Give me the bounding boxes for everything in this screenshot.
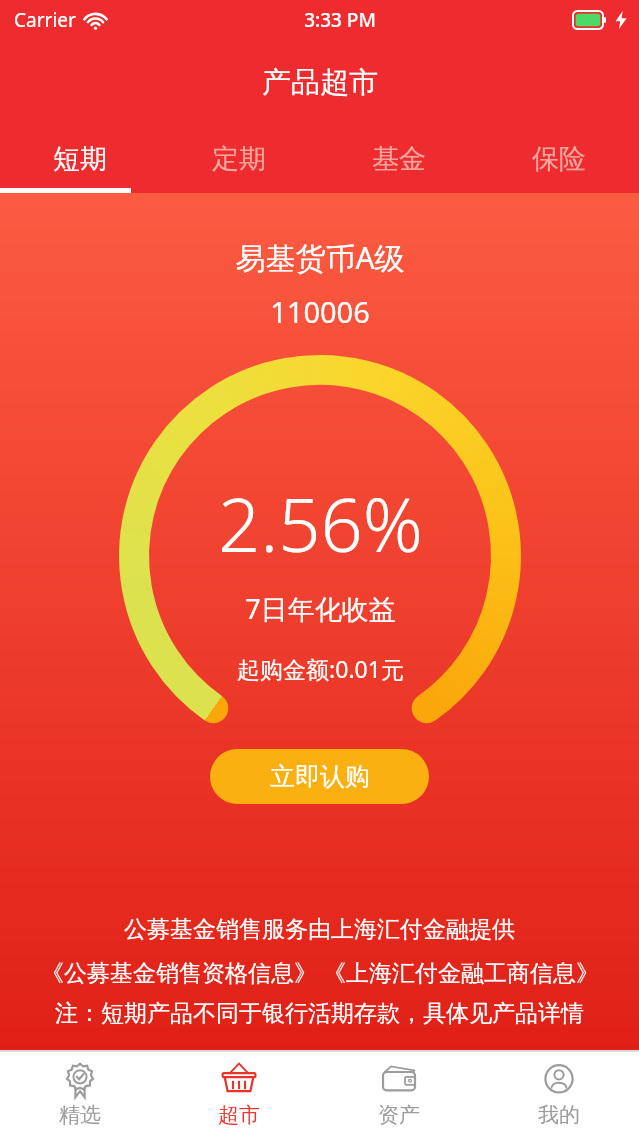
button[interactable]: 精选 (0, 1052, 159, 1136)
staticText: Carrier (14, 7, 76, 33)
staticText: 3:33 PM (304, 7, 376, 33)
button[interactable]: 立即认购 (210, 749, 429, 804)
button[interactable]: 定期 (159, 125, 319, 193)
staticText: 立即认购 (270, 761, 370, 792)
staticText: 注：短期产品不同于银行活期存款，具体见产品详情 (55, 999, 584, 1028)
staticText: 起购金额:0.01元 (237, 653, 404, 684)
staticText: 我的 (538, 1102, 580, 1128)
staticText: 产品超市 (262, 64, 378, 101)
button[interactable]: 我的 (479, 1052, 639, 1136)
staticText: 保险 (532, 142, 586, 176)
staticText: 110006 (270, 292, 370, 331)
button[interactable]: 基金 (319, 125, 479, 193)
staticText: 资产 (378, 1102, 420, 1128)
button[interactable]: 超市 (159, 1052, 319, 1136)
staticText: 易基货币A级 (235, 237, 405, 278)
staticText: 基金 (372, 142, 426, 176)
staticText: 短期 (53, 142, 107, 176)
staticText: 公募基金销售服务由上海汇付金融提供 (124, 915, 515, 944)
staticText: 精选 (59, 1102, 101, 1128)
button[interactable]: 保险 (479, 125, 639, 193)
button[interactable]: 短期 (0, 125, 159, 193)
staticText: 定期 (212, 142, 266, 176)
staticText: 2.56% (218, 473, 423, 574)
staticText: 《公募基金销售资格信息》 《上海汇付金融工商信息》 (41, 956, 599, 987)
staticText: 超市 (218, 1102, 260, 1128)
staticText: 7日年化收益 (245, 590, 396, 627)
button[interactable]: 资产 (319, 1052, 479, 1136)
